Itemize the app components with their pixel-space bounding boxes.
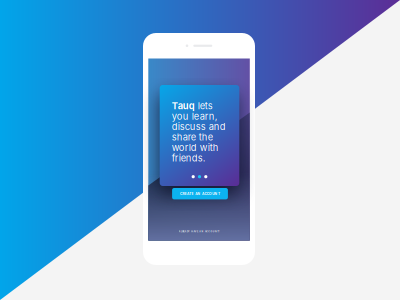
button[interactable]: CREATE AN ACCOUNT [172, 188, 228, 199]
staticText: CREATE AN ACCOUNT [180, 192, 220, 196]
button[interactable]: ALREADY HAVE AN ACCOUNT? [148, 227, 250, 235]
staticText: ALREADY HAVE AN ACCOUNT? [179, 230, 219, 233]
staticText: Tauq lets you learn, discuss and share t… [172, 100, 226, 164]
